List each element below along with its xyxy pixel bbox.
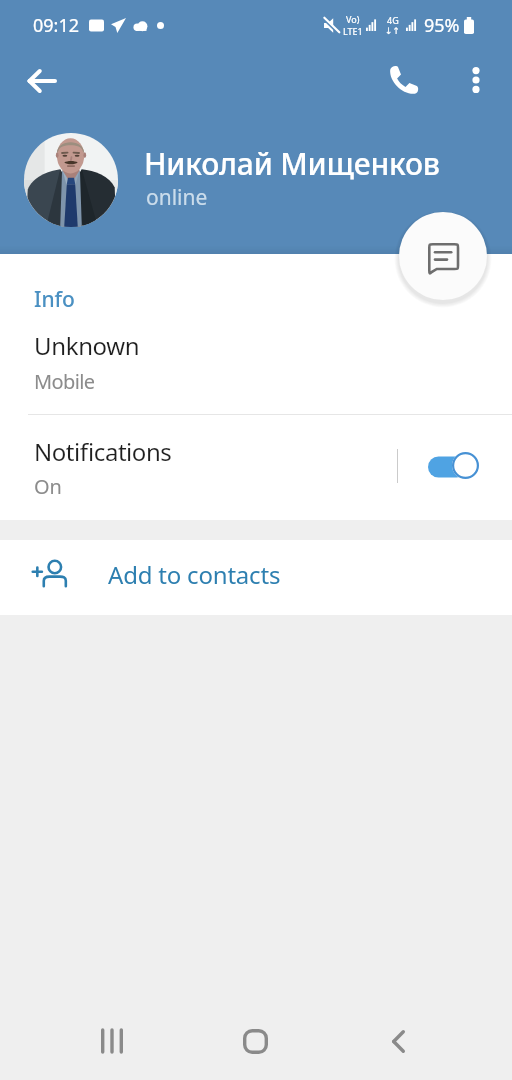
- button[interactable]: Back: [13, 52, 70, 109]
- staticText: Николай Мищенков: [144, 143, 440, 184]
- staticText: Add to contacts: [108, 558, 281, 591]
- button[interactable]: Recents: [69, 1002, 155, 1080]
- button[interactable]: More options: [450, 54, 502, 106]
- button[interactable]: Back: [355, 1002, 441, 1080]
- staticText: 09:12: [33, 13, 80, 38]
- button[interactable]: Add to contacts: [0, 540, 512, 615]
- button[interactable]: Unknown: [0, 314, 512, 414]
- button[interactable]: Notifications: [0, 415, 512, 520]
- button[interactable]: Home: [212, 1002, 298, 1080]
- staticText: online: [146, 183, 208, 212]
- staticText: On: [34, 473, 62, 500]
- button[interactable]: Send message: [399, 212, 487, 300]
- staticText: 4G: [387, 14, 399, 26]
- staticText: Mobile: [34, 368, 95, 395]
- staticText: LTE1: [343, 25, 363, 37]
- staticText: Unknown: [34, 329, 140, 362]
- button[interactable]: Call: [376, 52, 432, 108]
- button[interactable]: Notifications toggle: [398, 436, 512, 496]
- staticText: Notifications: [34, 435, 172, 468]
- staticText: Vo): [346, 13, 360, 25]
- staticText: ↓↑: [385, 26, 401, 36]
- staticText: 95%: [424, 13, 460, 38]
- staticText: Info: [34, 285, 75, 314]
